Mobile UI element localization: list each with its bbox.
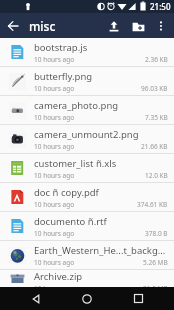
staticText: 10 hours ago	[34, 55, 75, 64]
staticText: 21:50	[150, 1, 171, 12]
button[interactable]: Back	[21, 287, 51, 310]
staticText: 10 hours ago	[34, 258, 75, 267]
staticText: 10 hours ago	[34, 284, 75, 287]
button[interactable]: More options	[150, 15, 172, 37]
button[interactable]: bootstrap.js	[0, 38, 174, 66]
staticText: butterfly.png	[34, 70, 93, 83]
button[interactable]: Home	[72, 287, 102, 310]
button[interactable]: butterfly.png	[0, 67, 174, 95]
staticText: 10 hours ago	[34, 200, 75, 209]
staticText: 12.0 KB	[145, 171, 168, 180]
staticText: 10 hours ago	[34, 229, 75, 238]
staticText: 96.03 KB	[141, 84, 168, 93]
staticText: 10 hours ago	[34, 142, 75, 151]
button[interactable]: Recent apps	[123, 287, 153, 310]
staticText: camera_unmount2.png	[34, 128, 139, 141]
button[interactable]: doc ñ copy.pdf	[0, 183, 174, 211]
staticText: Earth_Western_He...t_background.png	[34, 244, 168, 257]
staticText: 21.66 KB	[141, 142, 168, 151]
button[interactable]: New folder	[126, 14, 150, 38]
button[interactable]: Archive.zip	[0, 270, 174, 287]
staticText: doc ñ copy.pdf	[34, 186, 99, 199]
button[interactable]: Upload	[102, 14, 126, 38]
staticText: Archive.zip	[34, 270, 83, 283]
staticText: 374.61 KB	[137, 200, 168, 209]
staticText: bootstrap.js	[34, 41, 88, 54]
button[interactable]: customer_list ñ.xls	[0, 154, 174, 182]
staticText: 10 hours ago	[34, 171, 75, 180]
button[interactable]: documento ñ.rtf	[0, 212, 174, 240]
button[interactable]: Back	[0, 13, 25, 38]
staticText: customer_list ñ.xls	[34, 157, 117, 170]
button[interactable]: camera_photo.png	[0, 96, 174, 124]
staticText: 10 hours ago	[34, 84, 75, 93]
button[interactable]: Earth_Western_He...t_background.png	[0, 241, 174, 269]
button[interactable]: camera_unmount2.png	[0, 125, 174, 153]
staticText: 5.26 MB	[143, 258, 168, 267]
staticText: documento ñ.rtf	[34, 215, 107, 228]
staticText: 21.0 MB	[143, 284, 168, 287]
staticText: 2.36 KB	[145, 55, 168, 64]
staticText: misc	[29, 18, 56, 34]
staticText: camera_photo.png	[34, 99, 119, 112]
staticText: 378.0 B	[145, 229, 168, 238]
staticText: 7.35 KB	[145, 113, 168, 122]
staticText: 10 hours ago	[34, 113, 75, 122]
